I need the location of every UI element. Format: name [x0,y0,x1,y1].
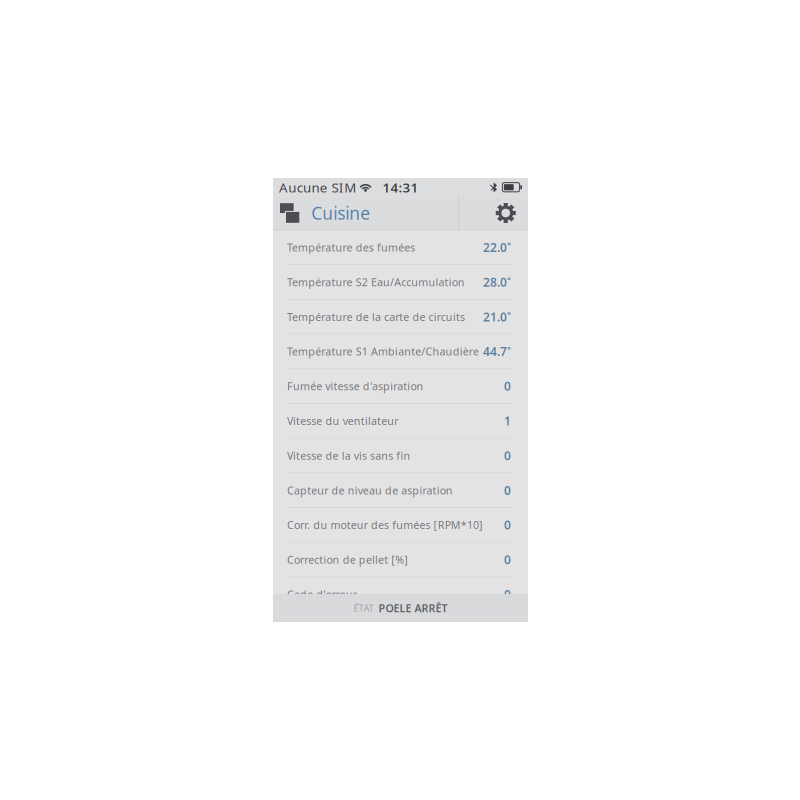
staticText: 21.0 [483,309,507,325]
button[interactable]: Vitesse de la vis sans fin [273,439,528,472]
button[interactable]: Corr. du moteur des fumées [RPM*10] [273,508,528,542]
staticText: Température des fumées [287,240,415,254]
staticText: 22.0 [483,239,507,255]
button[interactable]: Code d'erreur [273,577,528,611]
staticText: Cuisine [311,201,370,224]
staticText: Aucune SIM [279,178,356,196]
staticText: Température S2 Eau/Accumulation [287,275,465,289]
staticText: ° [507,239,511,251]
staticText: 0 [504,448,511,463]
staticText: ° [507,308,511,321]
button[interactable]: Température des fumées [273,230,528,264]
staticText: 0 [504,378,511,394]
staticText: Température S1 Ambiante/Chaudière [287,344,479,359]
button[interactable]: Settings [459,196,528,229]
staticText: ° [507,273,511,286]
button[interactable]: Température S2 Eau/Accumulation [273,265,528,299]
button[interactable]: Température de la carte de circuits [273,300,528,334]
staticText: Vitesse du ventilateur [287,414,398,428]
staticText: ÉTAT [353,602,373,614]
button[interactable]: Fumée vitesse d'aspiration [273,369,528,403]
staticText: 28.0 [483,274,507,290]
staticText: Température de la carte de circuits [287,310,465,324]
button[interactable]: Vitesse du ventilateur [273,404,528,438]
staticText: 14:31 [382,178,418,196]
staticText: Code d'erreur [287,587,357,601]
staticText: Vitesse de la vis sans fin [287,448,410,463]
button[interactable]: Correction de pellet [%] [273,543,528,577]
button[interactable]: Cuisine [273,196,458,229]
staticText: Capteur de niveau de aspiration [287,483,453,497]
staticText: 0 [504,482,511,498]
staticText: Fumée vitesse d'aspiration [287,379,423,393]
staticText: 0 [504,586,511,602]
staticText: 44.7 [483,343,507,359]
staticText: 0 [504,552,511,568]
button[interactable]: Température S1 Ambiante/Chaudière [273,334,528,368]
staticText: Correction de pellet [%] [287,553,408,567]
staticText: Corr. du moteur des fumées [RPM*10] [287,518,483,532]
button[interactable]: Capteur de niveau de aspiration [273,473,528,507]
staticText: 0 [504,517,511,533]
staticText: ° [507,343,511,355]
staticText: 1 [504,413,511,429]
staticText: POELE ARRÊT [378,601,447,615]
